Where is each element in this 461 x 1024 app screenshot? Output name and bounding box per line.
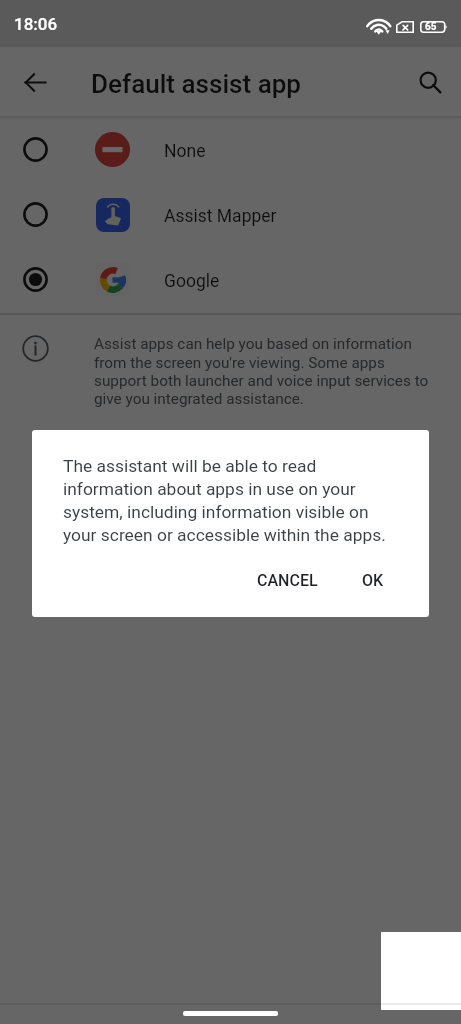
staticText: Google (164, 271, 220, 292)
button[interactable]: Google (0, 247, 461, 312)
staticText: CANCEL (257, 571, 318, 590)
staticText: Default assist app (91, 69, 301, 99)
staticText: The assistant will be able to read infor… (63, 456, 391, 545)
button[interactable]: CANCEL (247, 562, 328, 599)
staticText: 18:06 (14, 14, 58, 34)
button[interactable]: Navigate up (11, 58, 59, 106)
button[interactable]: Assist Mapper (0, 182, 461, 247)
staticText: Assist Mapper (164, 206, 277, 227)
staticText: Assist apps can help you based on inform… (94, 335, 434, 407)
staticText: OK (362, 571, 384, 590)
staticText: None (164, 141, 206, 162)
staticText: 65 (425, 21, 437, 33)
button[interactable]: None (0, 117, 461, 182)
button[interactable]: Search (406, 58, 454, 106)
button[interactable]: OK (352, 562, 394, 599)
